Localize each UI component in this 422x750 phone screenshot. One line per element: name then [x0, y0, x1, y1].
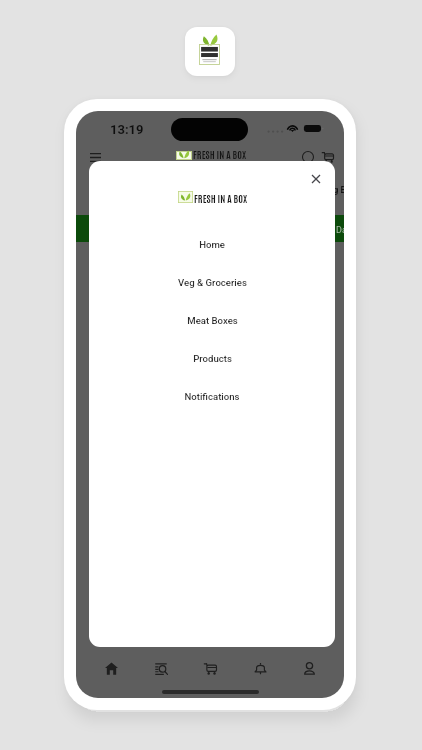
staticText: Veg & Groceries: [178, 277, 247, 288]
button[interactable]: Veg & Groceries: [89, 263, 335, 301]
button[interactable]: Home: [96, 653, 126, 683]
staticText: Products: [193, 353, 232, 364]
button[interactable]: Profile: [294, 653, 324, 683]
button[interactable]: Cart: [318, 147, 338, 167]
staticText: 13:19: [110, 122, 144, 137]
button[interactable]: Home: [89, 225, 335, 263]
button[interactable]: Search: [298, 147, 318, 167]
button[interactable]: Track order: [146, 653, 176, 683]
staticText: FRESH IN A BOX: [193, 148, 247, 161]
staticText: Daily Fresh Deals: [336, 225, 344, 236]
staticText: Meat Boxes: [187, 315, 238, 326]
staticText: FRESH IN A BOX: [194, 192, 248, 205]
staticText: Everything Fresh, Delivered in a Big B: [196, 185, 344, 196]
button[interactable]: Meat Boxes: [89, 301, 335, 339]
button[interactable]: Products: [89, 339, 335, 377]
staticText: Home: [199, 239, 225, 250]
button[interactable]: Close menu: [306, 169, 325, 188]
button[interactable]: Open navigation menu: [84, 146, 106, 168]
button[interactable]: Notifications: [89, 377, 335, 415]
button[interactable]: Notifications: [245, 653, 275, 683]
button[interactable]: Cart: [195, 653, 225, 683]
staticText: Notifications: [184, 391, 240, 402]
